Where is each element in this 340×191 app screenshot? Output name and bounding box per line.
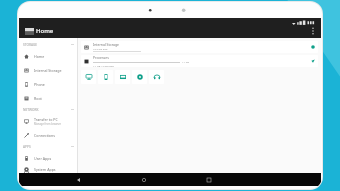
button[interactable]: Settings (132, 70, 147, 84)
button[interactable]: Phone (98, 70, 113, 84)
staticText: Manage from browser (34, 122, 62, 126)
staticText: Phone (34, 82, 45, 87)
button[interactable]: Music (149, 70, 164, 84)
staticText: Internal Storage (93, 42, 119, 47)
button[interactable]: System Apps (19, 165, 77, 173)
button[interactable]: Recent apps (203, 174, 215, 186)
button[interactable]: Connections (19, 128, 77, 142)
button[interactable]: More options (307, 23, 319, 38)
staticText: Home (34, 54, 45, 59)
staticText: NETWORK (23, 108, 39, 112)
button[interactable]: Open navigation drawer (22, 25, 36, 37)
button[interactable]: Phone (19, 77, 77, 91)
button[interactable]: Internal Storage (81, 41, 318, 53)
staticText: Home (36, 27, 54, 35)
staticText: 1.1 GB / 2 GB used (93, 64, 114, 67)
button[interactable]: Transfer to PC (19, 114, 77, 128)
button[interactable]: Photos (115, 70, 130, 84)
button[interactable]: Root (19, 91, 77, 105)
button[interactable]: User Apps (19, 151, 77, 165)
button[interactable]: Processes (81, 55, 318, 67)
staticText: Connections (34, 133, 55, 138)
staticText: Processes (93, 55, 109, 60)
staticText: System Apps (34, 167, 56, 172)
staticText: Root (34, 96, 42, 101)
staticText: STORAGE (23, 43, 38, 47)
staticText: APPS (23, 145, 31, 149)
button[interactable]: Internal Storage (19, 63, 77, 77)
staticText: 1.1 GB (182, 61, 190, 64)
staticText: 16.2 GB free (93, 47, 108, 50)
staticText: Internal Storage (34, 68, 62, 73)
button[interactable]: Computer (81, 70, 96, 84)
staticText: Transfer to PC (34, 117, 58, 122)
button[interactable]: Home (138, 174, 150, 186)
staticText: User Apps (34, 156, 52, 161)
button[interactable]: Back (73, 174, 85, 186)
button[interactable]: Home (19, 49, 77, 63)
